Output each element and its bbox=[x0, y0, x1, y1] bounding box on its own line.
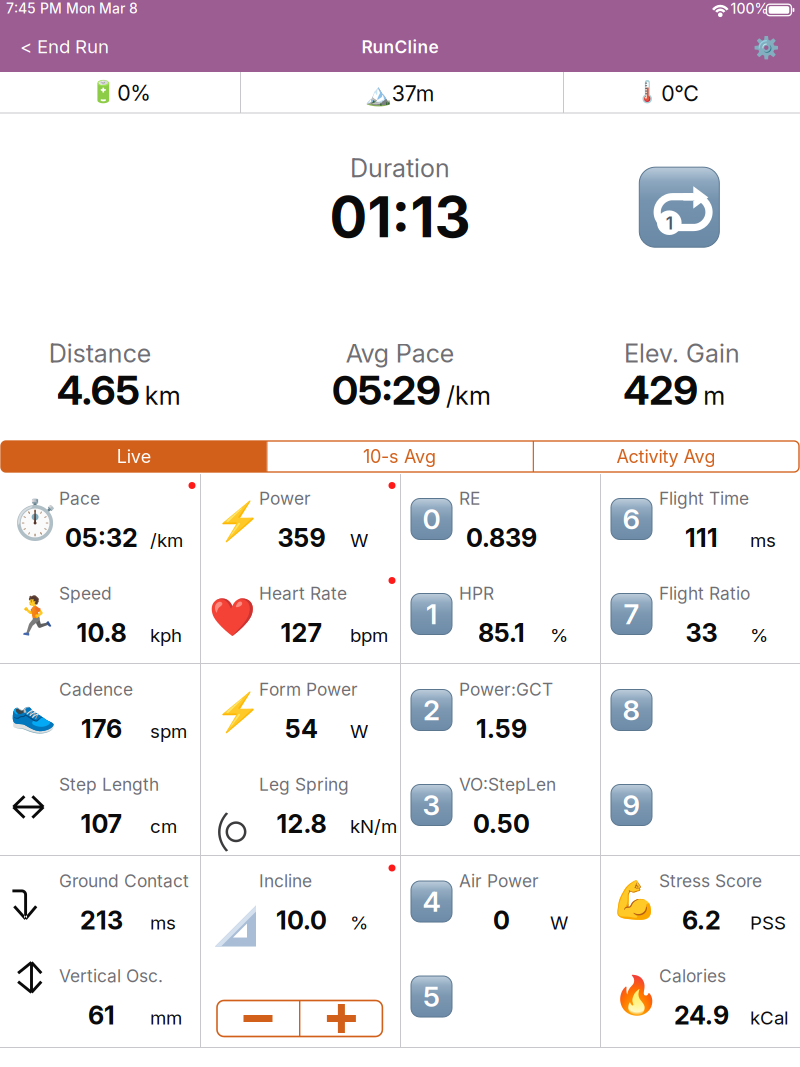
button[interactable]: 👟 bbox=[0, 665, 200, 760]
staticText: ⚙️ bbox=[752, 35, 779, 60]
button[interactable]: 1 bbox=[400, 569, 600, 664]
button[interactable]: 0 bbox=[400, 474, 600, 569]
staticText: 0 bbox=[422, 502, 440, 536]
staticText: mm bbox=[150, 1006, 182, 1029]
staticText: Cadence bbox=[59, 679, 133, 700]
button[interactable]: 6 bbox=[600, 474, 800, 569]
staticText: 24.9 bbox=[674, 1000, 729, 1031]
button[interactable]: Settings bbox=[744, 26, 788, 70]
staticText: 12.8 bbox=[276, 808, 326, 839]
staticText: 3 bbox=[422, 788, 440, 822]
staticText: 2 bbox=[423, 693, 440, 727]
staticText: RunCline bbox=[361, 36, 438, 57]
staticText: 37m bbox=[392, 81, 435, 106]
staticText: PSS bbox=[750, 911, 786, 934]
button[interactable]: Ground Contact bbox=[0, 856, 200, 951]
button[interactable]: 💪 bbox=[600, 856, 800, 951]
staticText: Step Length bbox=[59, 774, 159, 795]
staticText: HPR bbox=[459, 583, 494, 604]
staticText: Power:GCT bbox=[459, 679, 553, 700]
button[interactable]: < End Run bbox=[0, 24, 123, 68]
staticText: 🌡 bbox=[634, 79, 661, 104]
staticText: W bbox=[550, 911, 568, 934]
staticText: cm bbox=[150, 815, 177, 838]
staticText: 127 bbox=[280, 617, 322, 648]
staticText: ⚡ bbox=[215, 499, 261, 543]
staticText: kCal bbox=[750, 1006, 789, 1029]
staticText: 05:32 bbox=[65, 522, 138, 553]
staticText: /km bbox=[446, 380, 491, 411]
staticText: ms bbox=[150, 911, 176, 934]
staticText: 33 bbox=[685, 617, 717, 648]
staticText: Air Power bbox=[459, 870, 539, 891]
staticText: Power bbox=[259, 488, 311, 509]
staticText: Form Power bbox=[259, 679, 358, 700]
staticText: 1.59 bbox=[476, 713, 527, 744]
staticText: ❤️ bbox=[209, 595, 255, 639]
button[interactable]: 4 bbox=[400, 856, 600, 951]
button[interactable]: 7 bbox=[600, 569, 800, 664]
button[interactable]: Vertical Osc. bbox=[0, 951, 200, 1046]
button[interactable]: Live bbox=[1, 441, 266, 472]
button[interactable]: ❤️ bbox=[200, 569, 400, 664]
button[interactable]: 🔥 bbox=[600, 951, 800, 1046]
staticText: 6.2 bbox=[682, 905, 721, 936]
staticText: Vertical Osc. bbox=[59, 965, 163, 986]
staticText: 🏃 bbox=[12, 594, 58, 638]
button[interactable]: Increase incline bbox=[300, 1000, 382, 1036]
staticText: 5 bbox=[423, 980, 440, 1013]
staticText: 176 bbox=[81, 713, 122, 744]
staticText: Distance bbox=[49, 338, 151, 369]
button[interactable]: Decrease incline bbox=[217, 1000, 299, 1036]
staticText: 107 bbox=[80, 808, 122, 839]
staticText: 6 bbox=[622, 502, 640, 536]
button[interactable]: ⏱ bbox=[0, 474, 200, 569]
staticText: spm bbox=[150, 720, 187, 743]
staticText: bpm bbox=[350, 624, 388, 647]
staticText: W bbox=[350, 720, 368, 743]
staticText: ⏱ bbox=[11, 497, 59, 542]
staticText: 💪 bbox=[611, 878, 657, 922]
staticText: 359 bbox=[277, 522, 325, 553]
staticText: 61 bbox=[88, 1000, 115, 1031]
staticText: % bbox=[750, 624, 768, 647]
button[interactable]: Leg Spring bbox=[200, 760, 400, 855]
button[interactable]: 10-s Avg bbox=[266, 441, 533, 472]
staticText: RE bbox=[459, 488, 480, 509]
button[interactable]: 5 bbox=[400, 951, 600, 1046]
staticText: 7 bbox=[623, 597, 639, 631]
staticText: W bbox=[350, 529, 368, 552]
staticText: Flight Time bbox=[659, 488, 749, 509]
staticText: Speed bbox=[59, 583, 112, 604]
button[interactable]: ⚡ bbox=[200, 665, 400, 760]
staticText: % bbox=[550, 624, 568, 647]
button[interactable]: Step Length bbox=[0, 760, 200, 855]
staticText: 111 bbox=[685, 522, 718, 553]
staticText: Live bbox=[117, 446, 151, 467]
button[interactable]: Incline bbox=[200, 856, 400, 951]
button[interactable]: 3 bbox=[400, 760, 600, 855]
staticText: 85.1 bbox=[478, 617, 525, 648]
button[interactable]: 9 bbox=[600, 760, 800, 855]
staticText: Pace bbox=[59, 488, 100, 509]
staticText: 7:45 PM bbox=[6, 0, 62, 17]
staticText: Flight Ratio bbox=[659, 583, 750, 604]
button[interactable]: 2 bbox=[400, 665, 600, 760]
button[interactable]: ⚡ bbox=[200, 474, 400, 569]
staticText: 0.50 bbox=[473, 808, 530, 839]
staticText: 1 bbox=[426, 597, 437, 631]
staticText: Stress Score bbox=[659, 870, 762, 891]
staticText: 4 bbox=[422, 885, 440, 918]
button[interactable]: Activity Avg bbox=[533, 441, 799, 472]
staticText: 🔋 bbox=[90, 79, 117, 104]
button[interactable]: 🏃 bbox=[0, 569, 200, 664]
button[interactable]: 8 bbox=[600, 665, 800, 760]
staticText: 1 bbox=[666, 213, 673, 234]
staticText: < End Run bbox=[20, 35, 109, 58]
staticText: 10-s Avg bbox=[363, 446, 436, 467]
staticText: 0.839 bbox=[466, 522, 537, 553]
staticText: Ground Contact bbox=[59, 870, 189, 891]
staticText: 9 bbox=[622, 788, 640, 822]
staticText: 👟 bbox=[10, 691, 56, 735]
staticText: Incline bbox=[259, 870, 312, 891]
